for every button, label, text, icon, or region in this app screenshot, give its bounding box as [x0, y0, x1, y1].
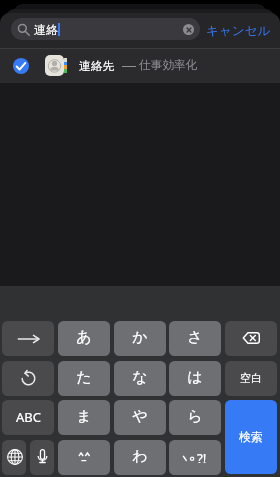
button[interactable]: あ — [58, 321, 110, 356]
staticText: 検索 — [239, 429, 263, 444]
staticText: あ — [76, 328, 92, 347]
button[interactable]: 連絡先 — [0, 49, 280, 83]
button[interactable] — [58, 440, 110, 475]
staticText: わ — [132, 447, 148, 466]
button[interactable]: た — [58, 361, 110, 396]
button[interactable]: キャンセル — [206, 13, 278, 48]
staticText: 仕事効率化 — [139, 58, 198, 73]
button[interactable]: な — [114, 361, 166, 396]
staticText: は — [187, 368, 203, 387]
button[interactable]: や — [114, 400, 166, 435]
staticText: か — [132, 328, 148, 347]
staticText: な — [132, 368, 148, 387]
staticText: 空白 — [240, 371, 262, 385]
staticText: や — [132, 407, 148, 426]
staticText: 連絡 — [34, 22, 58, 37]
button[interactable]: 検索 — [225, 400, 277, 474]
staticText: さ — [187, 328, 203, 347]
button[interactable]: さ — [169, 321, 221, 356]
staticText: ABC — [16, 408, 41, 426]
button[interactable]: 連絡 — [11, 18, 200, 40]
staticText: た — [76, 368, 92, 387]
button[interactable]: Next candidate — [2, 321, 54, 356]
staticText: ら — [187, 407, 203, 426]
button[interactable]: は — [169, 361, 221, 396]
button[interactable]: わ — [114, 440, 166, 475]
button[interactable]: か — [114, 321, 166, 356]
button[interactable]: Dictation — [30, 440, 54, 475]
staticText: キャンセル — [206, 23, 271, 39]
button[interactable]: Undo — [2, 361, 54, 396]
button[interactable]: 空白 — [225, 361, 277, 396]
button[interactable]: ら — [169, 400, 221, 435]
button[interactable]: Clear text — [183, 24, 194, 35]
staticText: ま — [76, 407, 92, 426]
staticText: ?! — [197, 450, 207, 463]
button[interactable]: Switch keyboard — [2, 440, 26, 475]
button[interactable]: Delete — [225, 321, 277, 356]
staticText: 連絡先 — [79, 59, 115, 74]
button[interactable]: ?! — [169, 440, 221, 475]
button[interactable]: ま — [58, 400, 110, 435]
button[interactable]: ABC — [2, 400, 54, 435]
